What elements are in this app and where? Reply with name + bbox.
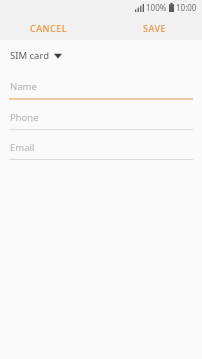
staticText: Phone bbox=[10, 111, 39, 124]
staticText: SIM card bbox=[10, 49, 49, 62]
staticText: Email bbox=[10, 141, 35, 154]
staticText: CANCEL bbox=[30, 22, 68, 34]
button[interactable]: Phone bbox=[0, 105, 202, 135]
button[interactable]: Email bbox=[0, 135, 202, 165]
staticText: SAVE bbox=[143, 22, 167, 34]
staticText: 10:00 bbox=[176, 2, 197, 13]
button[interactable]: SAVE bbox=[137, 18, 173, 38]
button[interactable]: SIM card bbox=[0, 40, 72, 71]
staticText: Name bbox=[10, 80, 37, 93]
button[interactable]: CANCEL bbox=[24, 18, 74, 38]
button[interactable]: Name bbox=[0, 74, 202, 105]
staticText: 100% bbox=[146, 2, 167, 13]
